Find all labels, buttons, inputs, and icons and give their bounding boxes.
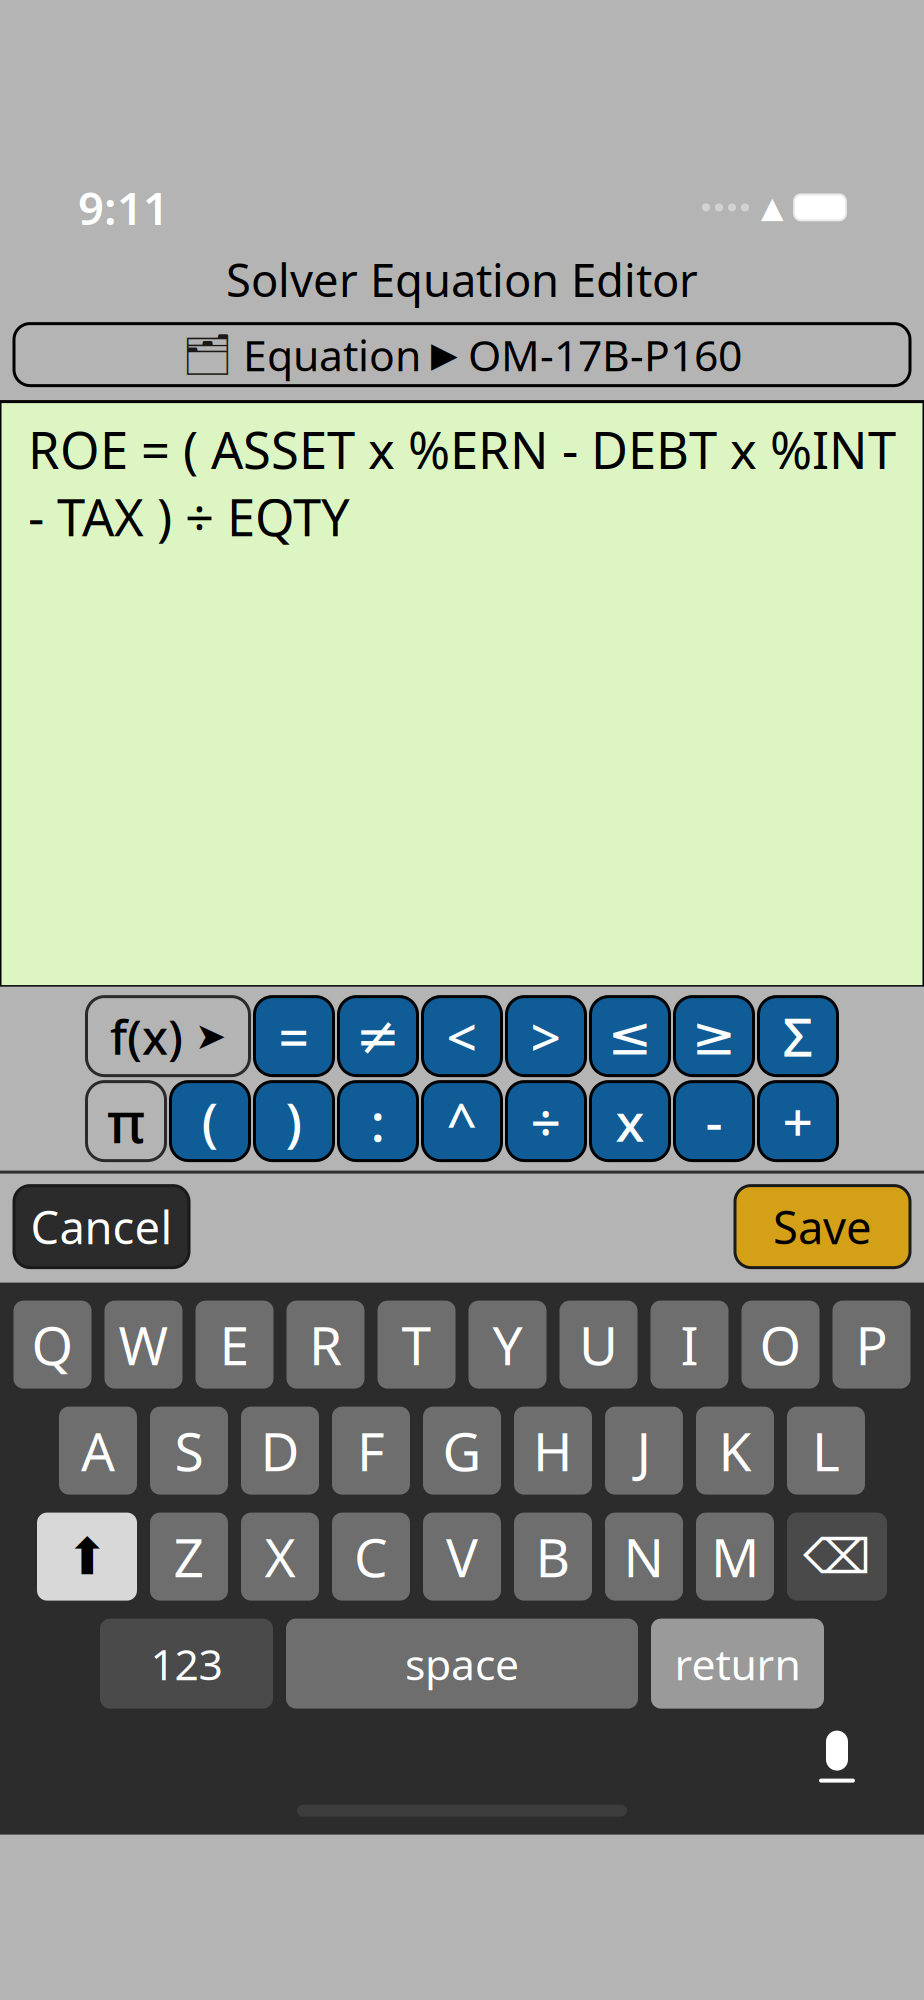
staticText: I xyxy=(680,1309,698,1380)
staticText: < xyxy=(446,1001,477,1071)
button[interactable]: T xyxy=(377,1301,455,1389)
staticText: + xyxy=(782,1086,813,1156)
staticText: N xyxy=(623,1521,664,1592)
staticText: ÷ xyxy=(530,1086,561,1156)
button[interactable]: ( xyxy=(170,1082,249,1161)
staticText: P xyxy=(855,1309,887,1380)
button[interactable]: ≤ xyxy=(590,997,669,1076)
button[interactable]: V xyxy=(423,1513,501,1601)
staticText: ➤ xyxy=(195,1015,226,1057)
button[interactable]: ≠ xyxy=(338,997,417,1076)
button[interactable]: Shift xyxy=(37,1513,137,1601)
staticText: : xyxy=(370,1086,385,1156)
staticText: Save xyxy=(773,1196,872,1257)
staticText: π xyxy=(107,1084,145,1158)
button[interactable]: 123 xyxy=(100,1619,273,1709)
staticText: W xyxy=(118,1309,168,1380)
staticText: = xyxy=(278,1001,309,1071)
button[interactable]: 🗂 xyxy=(14,324,910,386)
button[interactable]: N xyxy=(605,1513,683,1601)
button[interactable]: Z xyxy=(150,1513,228,1601)
button[interactable]: x xyxy=(590,1082,669,1161)
staticText: M xyxy=(711,1521,759,1592)
button[interactable]: M xyxy=(696,1513,774,1601)
button[interactable]: P xyxy=(832,1301,910,1389)
staticText: - xyxy=(705,1086,722,1156)
staticText: R xyxy=(309,1309,342,1380)
staticText: ( xyxy=(201,1086,218,1156)
staticText: O xyxy=(759,1309,801,1380)
button[interactable]: - xyxy=(674,1082,753,1161)
staticText: Z xyxy=(173,1521,204,1592)
staticText: Σ xyxy=(782,1001,813,1071)
button[interactable]: Save xyxy=(735,1186,910,1268)
button[interactable]: C xyxy=(332,1513,410,1601)
staticText: ) xyxy=(285,1086,302,1156)
staticText: U xyxy=(579,1309,618,1380)
button[interactable]: J xyxy=(605,1407,683,1495)
staticText: Equation xyxy=(243,326,421,383)
button[interactable]: = xyxy=(254,997,333,1076)
button[interactable]: Σ xyxy=(758,997,837,1076)
button[interactable]: π xyxy=(86,1082,165,1161)
button[interactable]: S xyxy=(150,1407,228,1495)
staticText: V xyxy=(446,1521,478,1592)
button[interactable]: W xyxy=(104,1301,182,1389)
button[interactable]: space xyxy=(286,1619,638,1709)
staticText: ▶ xyxy=(431,335,458,374)
button[interactable]: O xyxy=(741,1301,819,1389)
staticText: space xyxy=(405,1635,519,1692)
button[interactable]: return xyxy=(651,1619,824,1709)
staticText: ▲ xyxy=(761,191,784,224)
button[interactable]: Cancel xyxy=(14,1186,189,1268)
staticText: S xyxy=(174,1415,203,1486)
staticText: 🗂 xyxy=(182,332,233,377)
button[interactable]: U xyxy=(559,1301,637,1389)
staticText: D xyxy=(260,1415,299,1486)
staticText: return xyxy=(674,1635,800,1692)
button[interactable]: : xyxy=(338,1082,417,1161)
button[interactable]: ≥ xyxy=(674,997,753,1076)
staticText: f(x) xyxy=(110,1004,183,1068)
button[interactable]: + xyxy=(758,1082,837,1161)
staticText: E xyxy=(219,1309,249,1380)
button[interactable]: R xyxy=(286,1301,364,1389)
button[interactable]: > xyxy=(506,997,585,1076)
button[interactable]: H xyxy=(514,1407,592,1495)
button[interactable]: I xyxy=(650,1301,728,1389)
staticText: Cancel xyxy=(30,1196,172,1257)
button[interactable]: ^ xyxy=(422,1082,501,1161)
staticText: Y xyxy=(492,1309,522,1380)
staticText: ⬆ xyxy=(66,1528,108,1585)
button[interactable]: G xyxy=(423,1407,501,1495)
button[interactable]: L xyxy=(787,1407,865,1495)
button[interactable]: A xyxy=(59,1407,137,1495)
staticText: C xyxy=(354,1521,388,1592)
staticText: L xyxy=(812,1415,840,1486)
staticText: > xyxy=(530,1001,561,1071)
button[interactable]: < xyxy=(422,997,501,1076)
staticText: OM-17B-P160 xyxy=(468,326,742,383)
button[interactable]: X xyxy=(241,1513,319,1601)
staticText: F xyxy=(357,1415,385,1486)
staticText: A xyxy=(81,1415,115,1486)
button[interactable]: E xyxy=(195,1301,273,1389)
button[interactable]: B xyxy=(514,1513,592,1601)
staticText: ^ xyxy=(446,1086,477,1156)
button[interactable]: F xyxy=(332,1407,410,1495)
button[interactable]: Q xyxy=(13,1301,91,1389)
button[interactable]: Y xyxy=(468,1301,546,1389)
staticText: K xyxy=(718,1415,751,1486)
button[interactable]: Delete xyxy=(787,1513,887,1601)
button[interactable]: D xyxy=(241,1407,319,1495)
staticText: J xyxy=(636,1415,651,1486)
button[interactable]: Dictation xyxy=(802,1717,872,1797)
staticText: Solver Equation Editor xyxy=(226,249,698,310)
button[interactable]: K xyxy=(696,1407,774,1495)
staticText: G xyxy=(442,1415,481,1486)
button[interactable]: ÷ xyxy=(506,1082,585,1161)
staticText: ≠ xyxy=(355,1006,400,1066)
button[interactable]: ) xyxy=(254,1082,333,1161)
button[interactable]: f(x) xyxy=(86,997,249,1076)
staticText: ≤ xyxy=(607,1006,652,1066)
